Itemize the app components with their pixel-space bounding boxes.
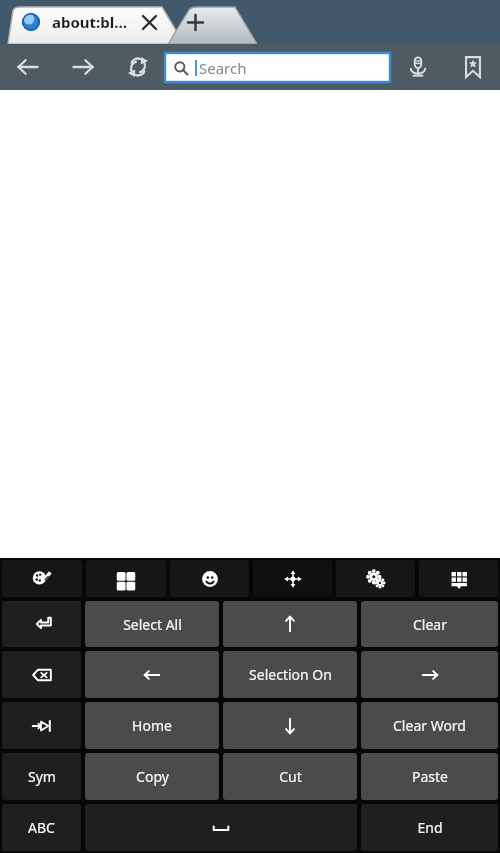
button[interactable]: Copy: [85, 753, 219, 800]
button[interactable]: Forward: [55, 44, 110, 90]
button[interactable]: Move keyboard: [253, 560, 332, 597]
staticText: Selection On: [249, 665, 332, 684]
button[interactable]: Selection On: [223, 651, 357, 698]
other: Site icon: [22, 13, 40, 31]
button[interactable]: Tab: [2, 702, 81, 749]
button[interactable]: Emoji: [170, 560, 249, 597]
button[interactable]: Enter: [2, 601, 81, 647]
button[interactable]: Up: [223, 601, 357, 647]
button[interactable]: Clear Word: [361, 702, 498, 749]
staticText: Copy: [136, 767, 169, 786]
button[interactable]: Home: [85, 702, 219, 749]
button[interactable]: New tab: [184, 11, 207, 34]
button[interactable]: Theme: [2, 560, 82, 597]
staticText: Clear: [413, 615, 447, 634]
button[interactable]: Left: [85, 651, 219, 698]
button[interactable]: Down: [223, 702, 357, 749]
button[interactable]: Space: [85, 804, 357, 851]
button[interactable]: Right: [361, 651, 498, 698]
staticText: Cut: [279, 767, 302, 786]
button[interactable]: Paste: [361, 753, 498, 800]
staticText: Sym: [28, 767, 56, 786]
button[interactable]: Voice search: [390, 44, 445, 90]
staticText: Clear Word: [393, 716, 466, 735]
button[interactable]: Hide keyboard: [419, 560, 498, 597]
button[interactable]: End: [361, 804, 498, 851]
staticText: Paste: [412, 767, 448, 786]
button[interactable]: Sym: [2, 753, 81, 800]
button[interactable]: ABC: [2, 804, 81, 851]
staticText: End: [417, 818, 443, 837]
staticText: Select All: [123, 615, 182, 634]
staticText: Home: [132, 716, 172, 735]
button[interactable]: Backspace: [2, 651, 81, 698]
staticText: ABC: [28, 818, 55, 837]
staticText: about:bl…: [52, 12, 128, 32]
staticText: Search: [199, 58, 247, 78]
button[interactable]: Close tab: [138, 11, 161, 34]
button[interactable]: Number pad: [86, 560, 166, 597]
button[interactable]: Bookmarks: [445, 44, 500, 90]
button[interactable]: Settings: [336, 560, 415, 597]
button[interactable]: Select All: [85, 601, 219, 647]
button[interactable]: Back: [0, 44, 55, 90]
button[interactable]: Clear: [361, 601, 498, 647]
button[interactable]: Reload: [110, 44, 165, 90]
button[interactable]: Cut: [223, 753, 357, 800]
button[interactable]: Search: [165, 53, 390, 82]
